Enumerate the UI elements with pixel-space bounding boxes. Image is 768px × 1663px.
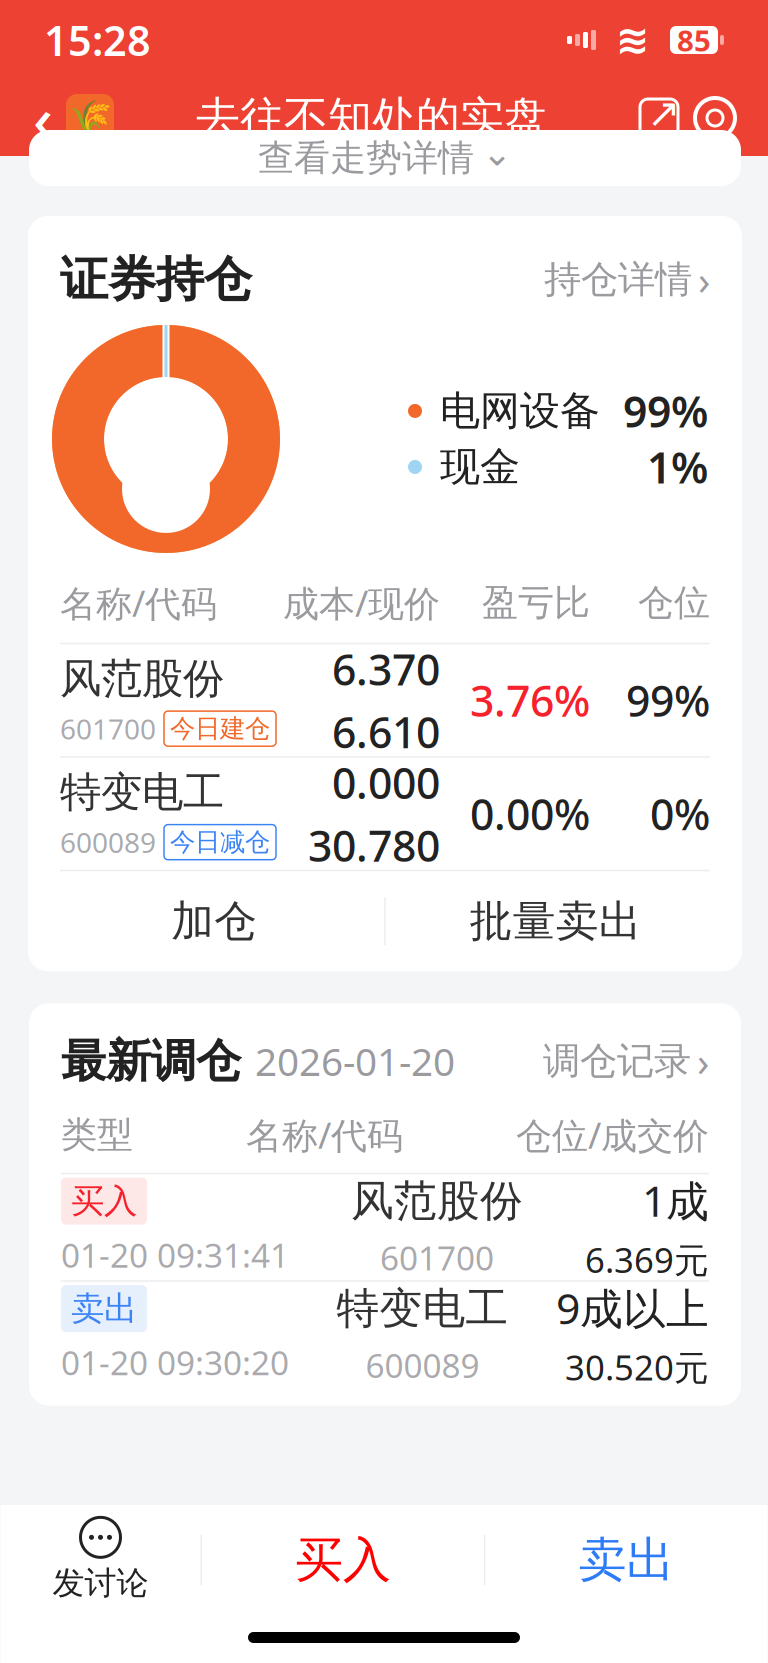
staticText: 发讨论 — [52, 1563, 148, 1603]
staticText: 仓位 — [638, 581, 710, 625]
button[interactable]: 查看走势详情 — [29, 130, 741, 186]
staticText: 600089 — [365, 1343, 479, 1387]
staticText: 🌾 — [68, 98, 111, 138]
staticText: › — [697, 1034, 709, 1088]
staticText: ↗ — [647, 90, 681, 136]
staticText: 99% — [623, 383, 708, 439]
staticText: 风范股份 — [60, 653, 224, 704]
staticText: 类型 — [61, 1113, 133, 1157]
staticText: 风范股份 — [351, 1175, 523, 1227]
staticText: 6.610 — [332, 703, 440, 760]
button[interactable]: 调仓记录 — [543, 1034, 709, 1088]
button[interactable]: 批量卖出 — [386, 871, 726, 971]
staticText: › — [698, 253, 710, 306]
staticText: 30.780 — [308, 817, 440, 873]
staticText: ≋ — [616, 17, 650, 63]
staticText: 15:28 — [44, 13, 151, 67]
staticText: 今日建仓 — [170, 713, 270, 744]
staticText: ‹ — [33, 77, 53, 159]
staticText: 01-20 09:31:41 — [61, 1233, 289, 1277]
staticText: 查看走势详情 — [258, 136, 474, 180]
staticText: 0% — [650, 785, 710, 842]
button[interactable]: 加仓 — [44, 871, 384, 971]
staticText: 卖出 — [71, 1288, 137, 1329]
staticText: 6.370 — [332, 641, 440, 697]
staticText: 买入 — [71, 1181, 137, 1221]
staticText: 1成 — [642, 1172, 709, 1229]
staticText: ⌄ — [482, 133, 512, 173]
staticText: 1% — [647, 439, 708, 495]
staticText: 99% — [626, 672, 710, 729]
staticText: 名称/代码 — [60, 579, 217, 627]
staticText: 01-20 09:30:20 — [61, 1340, 289, 1384]
staticText: 2026-01-20 — [255, 1035, 455, 1087]
button[interactable]: 买入 — [202, 1505, 484, 1615]
button[interactable]: 发讨论 — [0, 1505, 200, 1615]
staticText: 批量卖出 — [470, 895, 642, 947]
staticText: 最新调仓 — [61, 1033, 241, 1089]
staticText: 30.520元 — [565, 1344, 709, 1390]
staticText: 现金 — [440, 442, 520, 491]
staticText: 今日减仓 — [170, 827, 270, 858]
staticText: 买入 — [295, 1530, 391, 1589]
staticText: 0.000 — [332, 754, 440, 811]
staticText: 特变电工 — [60, 767, 224, 818]
staticText: 9成以上 — [556, 1279, 709, 1336]
button[interactable]: Settings — [688, 91, 742, 145]
staticText: 加仓 — [171, 895, 257, 947]
staticText: 盈亏比 — [482, 581, 590, 625]
staticText: 特变电工 — [336, 1282, 508, 1335]
staticText: 3.76% — [470, 672, 590, 729]
staticText: 601700 — [60, 710, 156, 747]
staticText: 6.369元 — [585, 1237, 709, 1283]
staticText: 成本/现价 — [283, 579, 440, 627]
staticText: 600089 — [60, 824, 156, 861]
button[interactable]: 持仓详情 — [544, 253, 710, 306]
staticText: 去往不知处的实盘 — [196, 91, 548, 145]
button[interactable]: Share — [630, 89, 688, 147]
staticText: 证券持仓 — [60, 250, 252, 309]
button[interactable]: 卖出 — [485, 1505, 767, 1615]
staticText: 卖出 — [578, 1530, 674, 1589]
staticText: 85 — [677, 20, 711, 59]
staticText: 601700 — [380, 1235, 494, 1280]
staticText: 0.00% — [470, 785, 590, 842]
staticText: 持仓详情 — [544, 257, 692, 302]
staticText: 调仓记录 — [543, 1038, 691, 1084]
staticText: 仓位/成交价 — [516, 1111, 709, 1159]
button[interactable]: Back — [20, 87, 66, 149]
staticText: 名称/代码 — [246, 1111, 403, 1159]
staticText: 电网设备 — [440, 386, 600, 435]
